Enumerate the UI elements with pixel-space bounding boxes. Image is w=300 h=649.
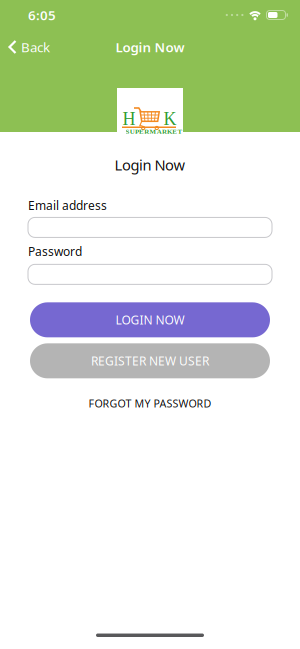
staticText: K (163, 109, 176, 129)
staticText: 6:05 (28, 6, 56, 24)
staticText: Login Now (115, 38, 184, 56)
staticText: SUPERMARKET (125, 127, 182, 135)
staticText: LOGIN NOW (115, 312, 184, 328)
staticText: FORGOT MY PASSWORD (88, 396, 211, 410)
staticText: Email address (28, 197, 107, 213)
button[interactable]: Back (0, 38, 50, 56)
staticText: Password (28, 243, 82, 259)
button[interactable]: LOGIN NOW (30, 302, 270, 337)
button[interactable]: FORGOT MY PASSWORD (88, 396, 211, 410)
button[interactable]: REGISTER NEW USER (30, 343, 270, 378)
staticText: Back (21, 38, 50, 56)
staticText: H (122, 109, 135, 129)
staticText: REGISTER NEW USER (91, 353, 209, 369)
staticText: Login Now (114, 155, 185, 174)
